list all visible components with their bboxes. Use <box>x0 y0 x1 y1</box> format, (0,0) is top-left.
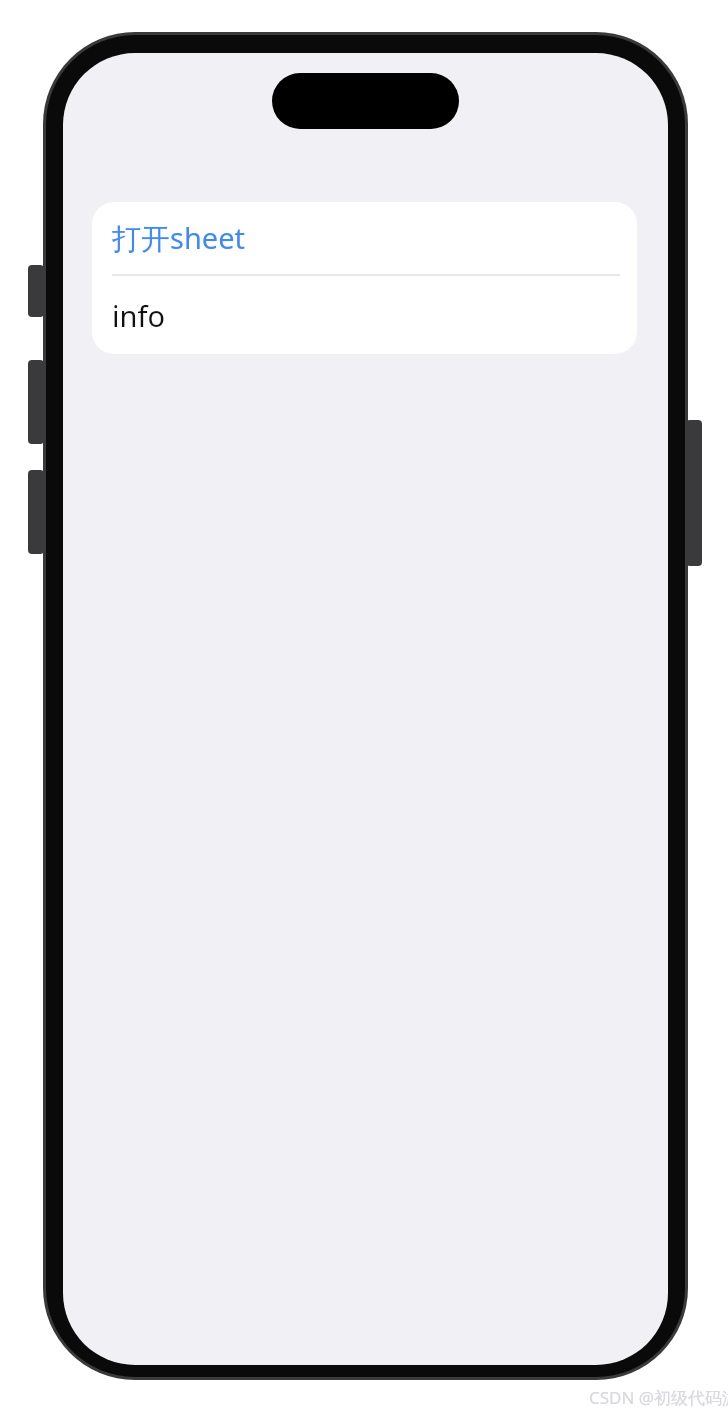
staticText: CSDN @初级代码游戏 <box>588 1386 728 1409</box>
button[interactable]: 打开sheet <box>92 202 637 274</box>
button[interactable]: info <box>92 276 637 354</box>
staticText: 打开sheet <box>112 218 245 258</box>
staticText: info <box>112 296 165 335</box>
other: Dynamic Island <box>272 73 459 129</box>
